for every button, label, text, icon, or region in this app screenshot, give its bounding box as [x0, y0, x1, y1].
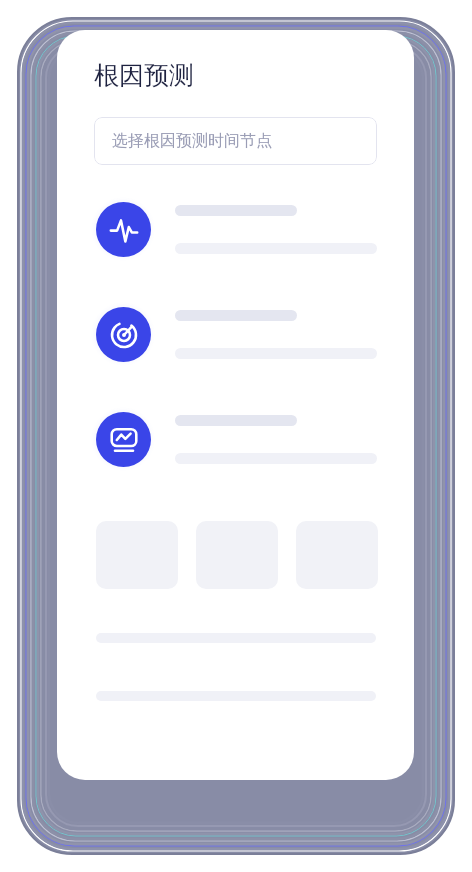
- staticText: 选择根因预测时间节点: [112, 131, 272, 151]
- button[interactable]: 监控趋势: [57, 407, 414, 471]
- button[interactable]: 根因定位: [57, 302, 414, 366]
- staticText: 根因预测: [94, 60, 194, 91]
- other: 监控趋势: [96, 412, 151, 467]
- button[interactable]: 选择根因预测时间节点: [94, 117, 377, 165]
- other: 指标波动: [96, 202, 151, 257]
- button[interactable]: 指标波动: [57, 197, 414, 261]
- other: 根因定位: [96, 307, 151, 362]
